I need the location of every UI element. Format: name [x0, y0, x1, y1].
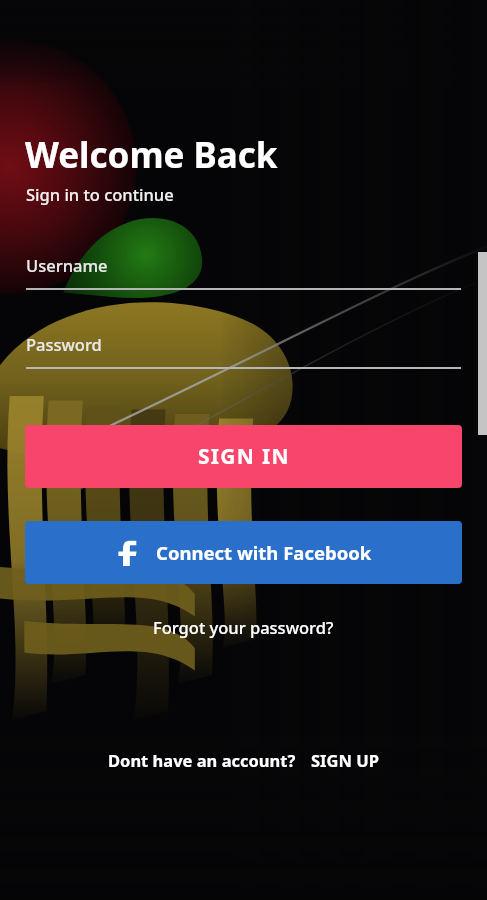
button[interactable]: SIGN IN	[25, 425, 462, 488]
button[interactable]: SIGN UP	[311, 749, 379, 771]
staticText: Forgot your password?	[153, 616, 334, 638]
button[interactable]: Username	[26, 254, 461, 290]
staticText: Dont have an account?	[108, 749, 296, 771]
staticText: Username	[26, 254, 108, 276]
button[interactable]: Connect with Facebook	[25, 521, 462, 584]
button[interactable]: Forgot your password?	[141, 608, 346, 646]
button[interactable]: Password	[26, 333, 461, 369]
staticText: SIGN IN	[198, 442, 290, 471]
staticText: Welcome Back	[25, 131, 278, 179]
staticText: Sign in to continue	[26, 183, 174, 205]
staticText: Password	[26, 333, 102, 355]
staticText: Connect with Facebook	[156, 540, 372, 565]
staticText: SIGN UP	[311, 749, 379, 771]
